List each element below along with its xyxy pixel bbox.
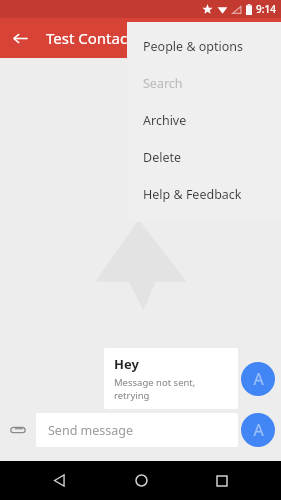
staticText: Message not sent, retrying (114, 376, 228, 402)
button[interactable]: Delete (127, 139, 281, 176)
button[interactable]: Hey (104, 348, 238, 409)
button[interactable]: Search (127, 65, 281, 102)
button[interactable]: Home (119, 461, 163, 500)
staticText: 9:14 (256, 2, 276, 16)
staticText: A (253, 419, 264, 441)
staticText: Archive (143, 112, 187, 129)
staticText: Search (143, 75, 183, 92)
staticText: A (253, 368, 264, 390)
button[interactable]: Help & Feedback (127, 176, 281, 213)
staticText: Delete (143, 149, 182, 166)
button[interactable]: Send message (36, 413, 238, 447)
button[interactable]: Back (0, 18, 40, 58)
staticText: Help & Feedback (143, 186, 242, 203)
button[interactable]: People & options (127, 28, 281, 65)
staticText: Send message (48, 422, 134, 439)
staticText: People & options (143, 38, 244, 55)
button[interactable]: Attach (0, 412, 36, 448)
staticText: Hey (114, 355, 139, 373)
staticText: Test Contact (46, 28, 133, 48)
button[interactable]: Back (37, 461, 81, 500)
button[interactable]: Recents (200, 461, 244, 500)
button[interactable]: Archive (127, 102, 281, 139)
